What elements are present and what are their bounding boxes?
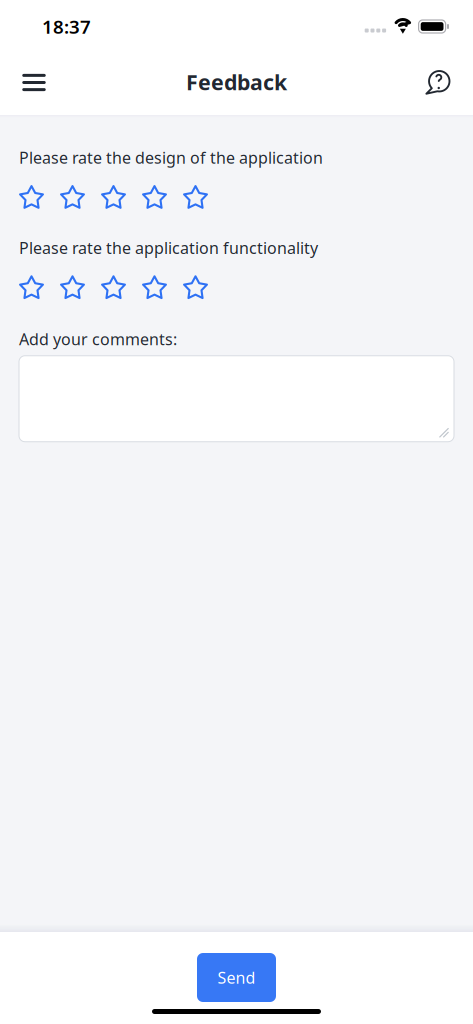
button[interactable]: Rate 5 star bbox=[183, 275, 208, 299]
button[interactable]: Send bbox=[197, 953, 276, 1002]
button[interactable]: Rate 5 star bbox=[183, 185, 208, 209]
staticText: Send bbox=[217, 967, 255, 988]
button[interactable]: Menu bbox=[11, 59, 57, 105]
staticText: Please rate the design of the applicatio… bbox=[19, 147, 323, 168]
button[interactable]: Rate 4 star bbox=[142, 185, 167, 209]
staticText: Add your comments: bbox=[19, 328, 177, 350]
button[interactable]: Rate 2 star bbox=[60, 185, 85, 209]
button[interactable]: Rate 3 star bbox=[101, 185, 126, 209]
button[interactable]: Rate 4 star bbox=[142, 275, 167, 299]
button[interactable]: Rate 2 star bbox=[60, 275, 85, 299]
button[interactable]: Rate 3 star bbox=[101, 275, 126, 299]
staticText: 18:37 bbox=[42, 14, 91, 39]
staticText: Please rate the application functionalit… bbox=[19, 237, 318, 258]
button[interactable]: Rate 1 star bbox=[19, 275, 44, 299]
button[interactable]: Rate 1 star bbox=[19, 185, 44, 209]
staticText: Feedback bbox=[186, 68, 287, 96]
button[interactable]: Help bbox=[415, 59, 461, 105]
